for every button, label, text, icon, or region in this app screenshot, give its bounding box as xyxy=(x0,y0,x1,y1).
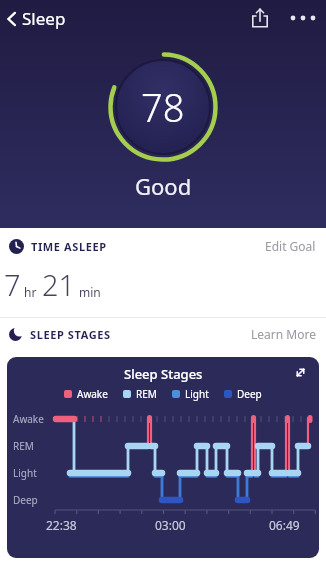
staticText: Sleep Stages xyxy=(124,365,203,383)
button[interactable]: Sleep Stages xyxy=(7,357,319,558)
staticText: Deep xyxy=(13,493,38,507)
button[interactable]: Edit Goal xyxy=(265,238,316,254)
staticText: Deep xyxy=(237,387,262,401)
button[interactable] xyxy=(290,8,316,28)
staticText: min xyxy=(79,284,101,300)
staticText: REM xyxy=(13,439,34,453)
staticText: 06:49 xyxy=(269,517,300,533)
button[interactable]: Sleep xyxy=(4,7,66,30)
staticText: TIME ASLEEP xyxy=(31,239,107,254)
staticText: 7 xyxy=(4,265,21,304)
button[interactable]: Learn More xyxy=(251,326,316,342)
staticText: Awake xyxy=(77,387,108,401)
staticText: Sleep xyxy=(22,7,66,30)
staticText: 22:38 xyxy=(46,517,77,533)
button[interactable]: TIME ASLEEP xyxy=(9,238,316,254)
staticText: hr xyxy=(24,284,37,300)
button[interactable] xyxy=(250,8,270,28)
staticText: REM xyxy=(136,387,157,401)
button[interactable]: SLEEP STAGES xyxy=(9,326,316,342)
staticText: Light xyxy=(185,387,209,401)
staticText: 78 xyxy=(141,81,185,133)
staticText: Light xyxy=(13,466,37,480)
staticText: Awake xyxy=(13,412,44,426)
staticText: 03:00 xyxy=(155,517,186,533)
staticText: Good xyxy=(135,171,192,201)
staticText: 21 xyxy=(42,265,76,304)
staticText: SLEEP STAGES xyxy=(30,327,111,342)
